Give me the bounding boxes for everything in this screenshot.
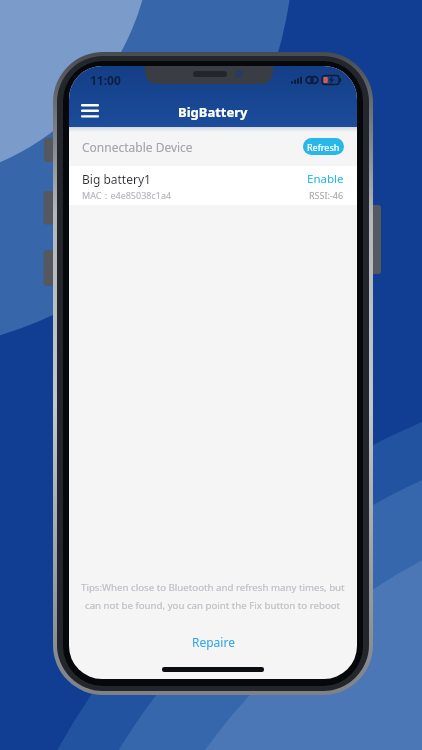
staticText: Refresh <box>307 141 340 153</box>
staticText: RSSI:-46 <box>309 189 344 201</box>
staticText: can not be found, you can point the Fix … <box>85 599 341 612</box>
staticText: Tips:When close to Bluetooth and refresh… <box>81 581 345 594</box>
staticText: BigBattery <box>178 103 248 121</box>
button[interactable]: Repaire <box>192 634 235 650</box>
button[interactable]: Refresh <box>303 138 344 155</box>
staticText: Big battery1 <box>82 171 151 187</box>
button[interactable] <box>73 96 107 126</box>
staticText: 11:00 <box>90 72 121 88</box>
staticText: MAC：e4e85038c1a4 <box>82 189 172 201</box>
staticText: Connectable Device <box>82 139 193 155</box>
button[interactable]: Big battery1 <box>69 166 357 205</box>
staticText: Enable <box>307 171 344 187</box>
staticText: Repaire <box>192 634 235 650</box>
